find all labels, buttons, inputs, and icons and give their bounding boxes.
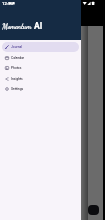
staticText: Momentum [2,22,32,31]
staticText: AI [34,21,43,31]
staticText: Insights [11,77,23,81]
button[interactable]: Settings [2,84,79,94]
staticText: Journal [11,45,23,49]
button[interactable]: Photos [2,63,79,73]
button[interactable]: New entry [88,205,99,215]
staticText: Settings [11,87,24,91]
button[interactable]: Journal [2,42,79,52]
staticText: Calendar [11,56,25,60]
button[interactable]: Insights [2,74,79,84]
button[interactable]: Calendar [2,53,79,63]
staticText: 12:56 [2,1,13,6]
staticText: Photos [11,66,22,70]
